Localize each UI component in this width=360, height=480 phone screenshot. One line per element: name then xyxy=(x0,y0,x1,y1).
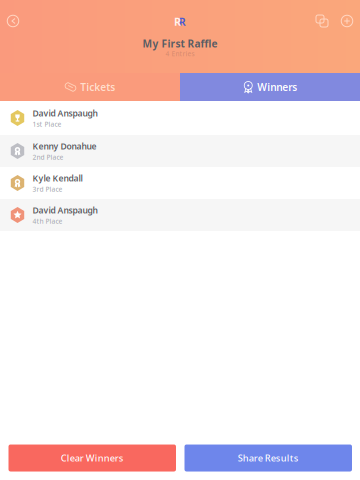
staticText: David Anspaugh xyxy=(32,107,97,119)
staticText: David Anspaugh xyxy=(32,204,97,216)
staticText: Winners xyxy=(257,80,297,94)
staticText: 3rd Place xyxy=(32,185,62,194)
button[interactable]: Back xyxy=(0,8,26,34)
staticText: R xyxy=(174,14,181,29)
staticText: 4th Place xyxy=(32,217,62,226)
button[interactable]: Share Results xyxy=(184,444,352,471)
staticText: Kenny Donahue xyxy=(32,140,96,152)
button[interactable]: Clear Winners xyxy=(8,444,176,471)
staticText: Tickets xyxy=(80,80,115,94)
button[interactable]: David Anspaugh xyxy=(0,101,360,135)
button[interactable]: Draw xyxy=(310,8,334,34)
staticText: 2nd Place xyxy=(32,153,63,162)
button[interactable]: Add entry xyxy=(334,8,360,34)
button[interactable]: Kyle Kendall xyxy=(0,167,360,199)
button[interactable]: Winners xyxy=(180,73,360,101)
staticText: Clear Winners xyxy=(61,452,124,464)
staticText: R xyxy=(179,14,186,29)
button[interactable]: David Anspaugh xyxy=(0,199,360,231)
staticText: 1st Place xyxy=(32,120,61,129)
staticText: My First Raffle xyxy=(142,37,217,50)
staticText: Kyle Kendall xyxy=(32,172,82,184)
staticText: 4 Entries xyxy=(165,49,194,58)
button[interactable]: Kenny Donahue xyxy=(0,135,360,167)
button[interactable]: Tickets xyxy=(0,73,180,101)
staticText: Share Results xyxy=(238,452,299,464)
